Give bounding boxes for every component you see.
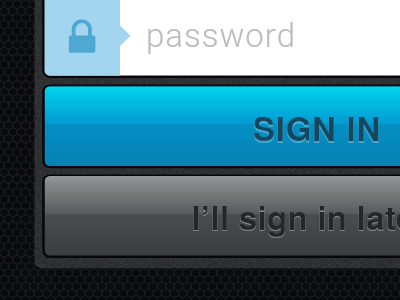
button[interactable]: I'll sign in later — [44, 178, 400, 257]
button[interactable]: Password — [44, 0, 400, 75]
button[interactable]: Sign in — [44, 87, 400, 169]
